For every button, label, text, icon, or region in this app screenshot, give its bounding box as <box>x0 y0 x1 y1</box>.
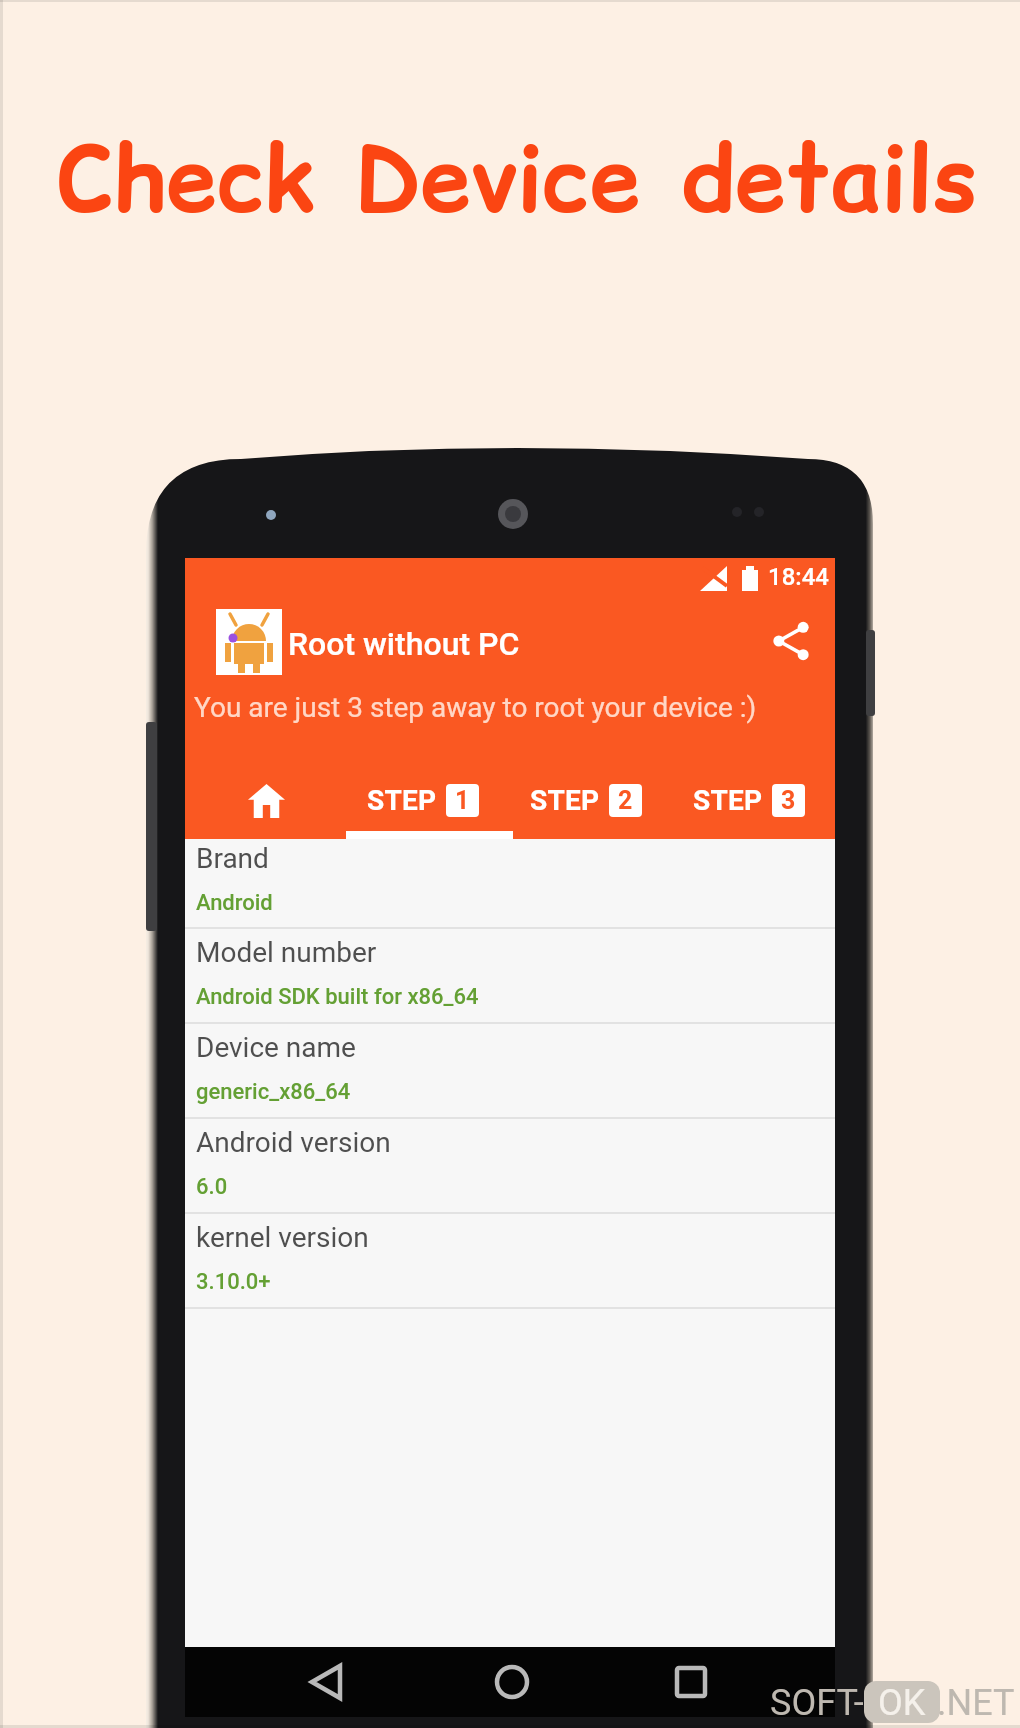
staticText: 18:44 <box>768 563 829 591</box>
button[interactable]: Android version <box>185 1119 835 1214</box>
staticText: .NET <box>937 1682 1015 1724</box>
staticText: STEP <box>530 784 600 817</box>
button[interactable]: STEP <box>347 771 509 830</box>
staticText: 1 <box>455 786 470 815</box>
staticText: Device name <box>196 1031 356 1064</box>
staticText: You are just 3 step away to root your de… <box>194 691 757 724</box>
staticText: kernel version <box>196 1221 369 1254</box>
staticText: Android <box>196 890 273 916</box>
button[interactable]: kernel version <box>185 1214 835 1309</box>
button[interactable]: Model number <box>185 929 835 1024</box>
button[interactable]: Device name <box>185 1024 835 1119</box>
staticText: Android SDK built for x86_64 <box>196 984 479 1010</box>
staticText: Check Device details <box>57 116 978 242</box>
staticText: 6.0 <box>196 1174 228 1200</box>
button[interactable]: STEP <box>672 771 835 830</box>
button[interactable]: Brand <box>185 839 835 929</box>
staticText: STEP <box>693 784 763 817</box>
button[interactable]: Home <box>185 771 347 830</box>
staticText: 3 <box>781 786 796 815</box>
staticText: 3.10.0+ <box>196 1269 271 1295</box>
staticText: Root without PC <box>288 625 520 663</box>
button[interactable]: Share <box>758 608 824 674</box>
staticText: SOFT- <box>770 1682 864 1724</box>
staticText: 2 <box>618 786 633 815</box>
staticText: generic_x86_64 <box>196 1079 351 1105</box>
staticText: Model number <box>196 936 377 969</box>
staticText: OK <box>878 1682 926 1724</box>
staticText: Brand <box>196 842 269 875</box>
button[interactable]: STEP <box>509 771 672 830</box>
staticText: STEP <box>367 784 437 817</box>
staticText: Android version <box>196 1126 391 1159</box>
